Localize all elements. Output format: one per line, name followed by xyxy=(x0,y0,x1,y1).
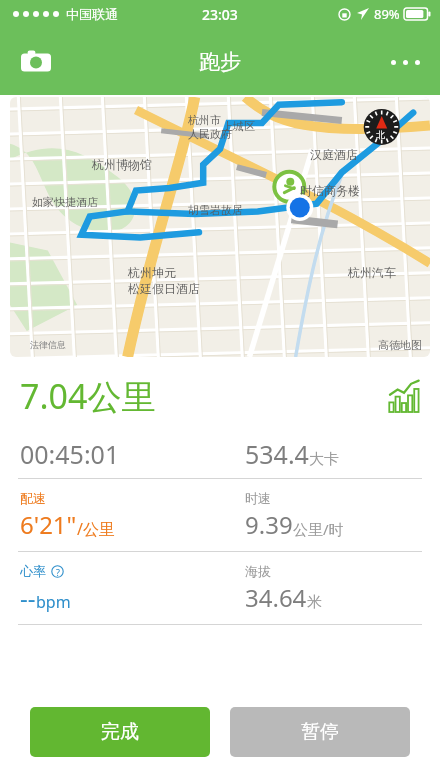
staticText: 汉庭酒店 xyxy=(310,147,358,162)
button[interactable]: 完成 xyxy=(30,707,210,757)
staticText: 如家快捷酒店 xyxy=(32,195,98,209)
staticText: 89% xyxy=(374,5,400,23)
button[interactable]: More options xyxy=(379,36,431,88)
staticText: 跑步 xyxy=(199,49,241,75)
staticText: 34.64 xyxy=(245,581,307,614)
staticText: 胡雪岩故居 xyxy=(188,203,243,217)
staticText: 6'21" xyxy=(20,508,77,541)
staticText: 法律信息 xyxy=(30,339,66,350)
staticText: 7.04公里 xyxy=(20,373,156,419)
staticText: 00:45:01 xyxy=(20,437,120,471)
staticText: 534.4 xyxy=(245,437,309,471)
staticText: 大卡 xyxy=(309,450,339,469)
button[interactable]: Camera xyxy=(10,36,62,88)
staticText: 杭州汽车 xyxy=(348,265,396,280)
staticText: 米 xyxy=(307,593,322,612)
staticText: 上城区 xyxy=(222,119,255,133)
button[interactable]: 心率 xyxy=(0,552,440,624)
staticText: bpm xyxy=(36,591,71,613)
staticText: /公里 xyxy=(77,518,115,540)
button[interactable]: 暂停 xyxy=(230,707,410,757)
button[interactable]: 配速 xyxy=(0,479,440,551)
staticText: 心率 xyxy=(20,563,46,579)
staticText: 公里/时 xyxy=(293,519,344,539)
staticText: 杭州博物馆 xyxy=(92,157,152,172)
staticText: ? xyxy=(56,566,60,578)
staticText: 杭州坤元 松廷假日酒店 xyxy=(128,265,200,297)
staticText: 完成 xyxy=(101,720,139,744)
staticText: 23:03 xyxy=(202,5,238,24)
staticText: 9.39 xyxy=(245,508,293,541)
button[interactable]: Statistics chart xyxy=(382,374,426,418)
staticText: 中国联通 xyxy=(66,6,118,22)
staticText: 时信商务楼 xyxy=(300,183,360,198)
staticText: 高德地图 xyxy=(378,338,422,352)
button[interactable]: Map xyxy=(10,97,430,357)
staticText: 北 xyxy=(376,129,385,140)
staticText: 配速 xyxy=(20,490,46,506)
staticText: -- xyxy=(20,581,36,614)
staticText: 杭州市 人民政府 xyxy=(188,113,232,141)
staticText: 时速 xyxy=(245,490,271,506)
staticText: 海拔 xyxy=(245,563,271,579)
staticText: 暂停 xyxy=(301,720,339,744)
